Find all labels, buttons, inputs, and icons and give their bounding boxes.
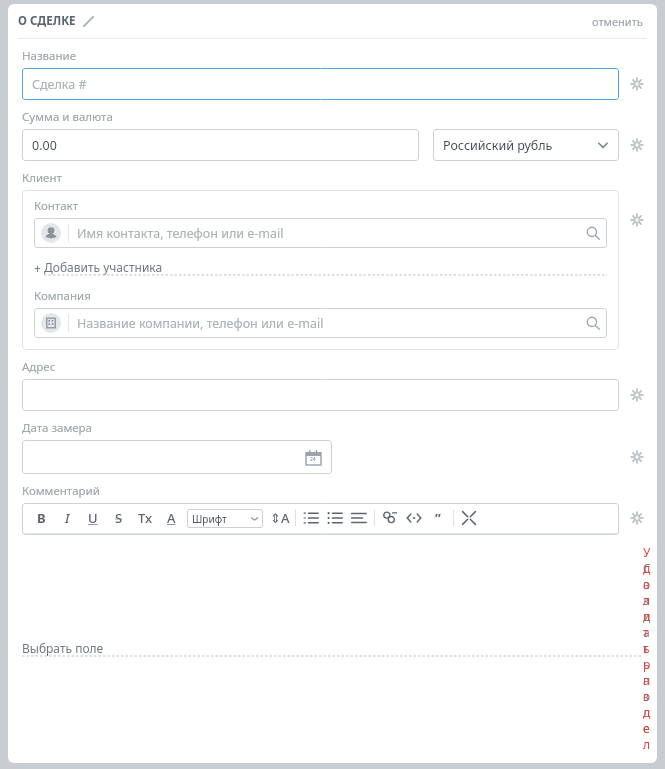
button[interactable]: Подчёркнутый bbox=[82, 507, 104, 529]
staticText: S bbox=[115, 509, 123, 527]
staticText: Добавить участника bbox=[44, 259, 163, 275]
button[interactable]: Настройки поля bbox=[625, 383, 649, 407]
button[interactable]: Полужирный bbox=[30, 507, 52, 529]
button[interactable]: Выбрать дату bbox=[22, 440, 332, 474]
button[interactable]: Нумерованный список bbox=[300, 507, 322, 529]
staticText: Выбрать поле bbox=[22, 640, 104, 656]
button[interactable]: Вставить ссылку bbox=[379, 507, 401, 529]
button[interactable]: Имя контакта, телефон или e-mail bbox=[34, 218, 607, 248]
button[interactable] bbox=[22, 379, 619, 411]
staticText: Компания bbox=[34, 288, 91, 304]
staticText: + bbox=[34, 260, 44, 276]
button[interactable]: Убрать форматирование bbox=[134, 507, 156, 529]
button[interactable]: Зачёркнутый bbox=[108, 507, 130, 529]
button[interactable]: + bbox=[34, 259, 607, 276]
button[interactable]: Выбрать поле bbox=[22, 640, 643, 657]
staticText: Tx bbox=[138, 509, 153, 527]
button[interactable]: Курсив bbox=[56, 507, 78, 529]
staticText: Контакт bbox=[34, 198, 79, 214]
staticText: Имя контакта, телефон или e-mail bbox=[77, 225, 284, 242]
staticText: Название bbox=[22, 48, 76, 64]
staticText: B bbox=[37, 509, 46, 527]
staticText: Дата замера bbox=[22, 420, 92, 436]
staticText: Адрес bbox=[22, 359, 56, 375]
staticText: Российский рубль bbox=[443, 137, 553, 154]
staticText: 24 bbox=[310, 456, 316, 463]
staticText: A bbox=[167, 509, 176, 527]
button[interactable]: Настройки поля bbox=[625, 72, 649, 96]
staticText: Название компании, телефон или e-mail bbox=[77, 315, 324, 332]
staticText: Сделка # bbox=[32, 76, 87, 93]
button[interactable]: Настройки поля bbox=[625, 506, 649, 530]
staticText: ” bbox=[435, 509, 441, 527]
button[interactable]: Сделка # bbox=[22, 68, 619, 100]
button[interactable]: Название компании, телефон или e-mail bbox=[34, 308, 607, 338]
button[interactable]: Маркированный список bbox=[324, 507, 346, 529]
staticText: U bbox=[88, 509, 98, 527]
button[interactable] bbox=[22, 534, 619, 535]
button[interactable]: Настройки поля bbox=[625, 445, 649, 469]
staticText: отменить bbox=[592, 14, 643, 29]
button[interactable]: Настройки поля bbox=[625, 133, 649, 157]
button[interactable]: 0.00 bbox=[22, 129, 419, 161]
staticText: 0.00 bbox=[32, 137, 57, 154]
button[interactable]: О СДЕЛКЕ bbox=[18, 13, 98, 29]
button[interactable]: Цитата bbox=[427, 507, 449, 529]
staticText: Шрифт bbox=[192, 512, 227, 526]
staticText: О СДЕЛКЕ bbox=[18, 13, 76, 29]
staticText: Клиент bbox=[22, 170, 62, 186]
button[interactable]: Настройки поля bbox=[625, 208, 649, 232]
button[interactable]: Цвет текста bbox=[160, 507, 182, 529]
button[interactable]: Размер текста bbox=[269, 507, 291, 529]
button[interactable]: Выбрать дату bbox=[302, 446, 324, 468]
staticText: Сумма и валюта bbox=[22, 109, 113, 125]
staticText: I bbox=[65, 509, 70, 527]
button[interactable]: Российский рубль bbox=[433, 129, 619, 161]
button[interactable]: Исходный код bbox=[403, 507, 425, 529]
staticText: ⇕A bbox=[270, 509, 290, 527]
button[interactable]: отменить bbox=[588, 10, 647, 33]
button[interactable]: Во весь экран bbox=[458, 507, 480, 529]
staticText: Комментарий bbox=[22, 483, 100, 499]
button[interactable]: Выравнивание bbox=[348, 507, 370, 529]
button[interactable]: Шрифт bbox=[187, 509, 263, 528]
